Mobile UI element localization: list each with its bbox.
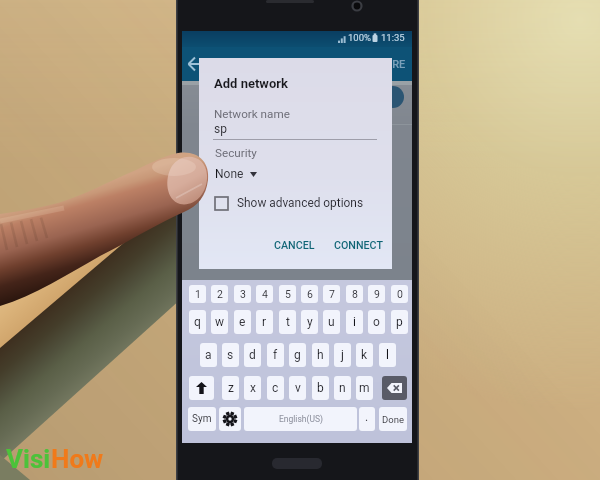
button[interactable]: 8 xyxy=(346,285,363,303)
staticText: 4 xyxy=(262,288,268,300)
button[interactable]: h xyxy=(312,343,329,367)
staticText: English(US) xyxy=(279,414,323,424)
staticText: Done xyxy=(382,414,404,425)
button[interactable]: Backspace xyxy=(382,376,407,400)
staticText: i xyxy=(353,315,356,329)
button[interactable]: y xyxy=(301,310,318,334)
staticText: Visi xyxy=(6,444,51,474)
button[interactable]: v xyxy=(289,376,306,400)
button[interactable]: l xyxy=(379,343,396,367)
button[interactable]: Show advanced options xyxy=(215,196,364,210)
button[interactable]: t xyxy=(279,310,296,334)
staticText: 6 xyxy=(307,288,313,300)
staticText: x xyxy=(250,381,256,395)
staticText: a xyxy=(205,348,212,362)
staticText: q xyxy=(194,315,201,329)
button[interactable]: n xyxy=(334,376,351,400)
staticText: 3 xyxy=(240,288,246,300)
button[interactable]: 6 xyxy=(301,285,318,303)
staticText: None xyxy=(215,167,244,181)
button[interactable]: 2 xyxy=(211,285,228,303)
staticText: t xyxy=(286,315,290,329)
staticText: Network name xyxy=(214,107,290,121)
button[interactable]: 0 xyxy=(391,285,408,303)
staticText: 0 xyxy=(397,288,403,300)
staticText: Security xyxy=(215,146,257,160)
staticText: j xyxy=(341,348,344,362)
button[interactable]: m xyxy=(356,376,373,400)
staticText: CANCEL xyxy=(274,239,315,252)
staticText: n xyxy=(339,381,346,395)
button[interactable]: 1 xyxy=(189,285,206,303)
button[interactable]: p xyxy=(391,310,408,334)
button[interactable]: CANCEL xyxy=(274,239,315,252)
staticText: h xyxy=(317,348,324,362)
button[interactable]: o xyxy=(368,310,385,334)
staticText: u xyxy=(328,315,335,329)
button[interactable]: k xyxy=(356,343,373,367)
button[interactable]: r xyxy=(256,310,273,334)
staticText: Show advanced options xyxy=(237,196,364,210)
button[interactable]: 4 xyxy=(256,285,273,303)
staticText: How xyxy=(51,444,104,474)
button[interactable]: f xyxy=(267,343,284,367)
button[interactable]: x xyxy=(244,376,261,400)
button[interactable]: z xyxy=(222,376,239,400)
staticText: d xyxy=(249,348,256,362)
button[interactable]: 9 xyxy=(368,285,385,303)
staticText: 1 xyxy=(195,288,201,300)
button[interactable]: 7 xyxy=(323,285,340,303)
staticText: Add network xyxy=(214,76,288,91)
button[interactable]: g xyxy=(289,343,306,367)
button[interactable]: None xyxy=(215,167,257,181)
staticText: r xyxy=(262,315,267,329)
staticText: f xyxy=(273,348,278,362)
button[interactable]: Done xyxy=(379,407,407,431)
button[interactable]: u xyxy=(323,310,340,334)
staticText: 7 xyxy=(329,288,335,300)
button[interactable]: b xyxy=(312,376,329,400)
staticText: m xyxy=(359,381,370,395)
button[interactable]: Symbols xyxy=(188,407,216,431)
staticText: 5 xyxy=(285,288,291,300)
button[interactable]: Space xyxy=(244,407,357,431)
staticText: e xyxy=(239,315,246,329)
button[interactable]: w xyxy=(211,310,228,334)
staticText: s xyxy=(227,348,234,362)
button[interactable]: 3 xyxy=(234,285,251,303)
button[interactable]: Add network xyxy=(382,86,404,108)
button[interactable]: CONNECT xyxy=(334,239,383,252)
staticText: Sym xyxy=(192,413,212,425)
staticText: 8 xyxy=(352,288,358,300)
button[interactable]: s xyxy=(222,343,239,367)
button[interactable]: c xyxy=(267,376,284,400)
staticText: . xyxy=(365,410,369,424)
button[interactable]: 5 xyxy=(279,285,296,303)
button[interactable]: j xyxy=(334,343,351,367)
staticText: v xyxy=(295,381,301,395)
button[interactable]: d xyxy=(244,343,261,367)
staticText: p xyxy=(396,315,403,329)
button[interactable]: a xyxy=(200,343,217,367)
button[interactable]: i xyxy=(346,310,363,334)
button[interactable]: Shift xyxy=(189,376,214,400)
staticText: 9 xyxy=(374,288,380,300)
staticText: z xyxy=(228,381,234,395)
staticText: o xyxy=(373,315,380,329)
staticText: b xyxy=(317,381,324,395)
staticText: y xyxy=(307,315,313,329)
button[interactable]: Period xyxy=(359,407,375,431)
button[interactable]: e xyxy=(234,310,251,334)
button[interactable]: MORE xyxy=(373,55,408,74)
staticText: 100% xyxy=(348,32,371,43)
staticText: l xyxy=(386,348,389,362)
button[interactable]: Keyboard settings xyxy=(219,407,241,431)
button[interactable]: q xyxy=(189,310,206,334)
staticText: k xyxy=(361,348,368,362)
staticText: CONNECT xyxy=(334,239,383,252)
staticText: w xyxy=(215,315,225,329)
staticText: c xyxy=(272,381,279,395)
staticText: g xyxy=(294,348,301,362)
button[interactable]: Navigate up xyxy=(184,52,208,76)
staticText: sp xyxy=(214,122,227,136)
